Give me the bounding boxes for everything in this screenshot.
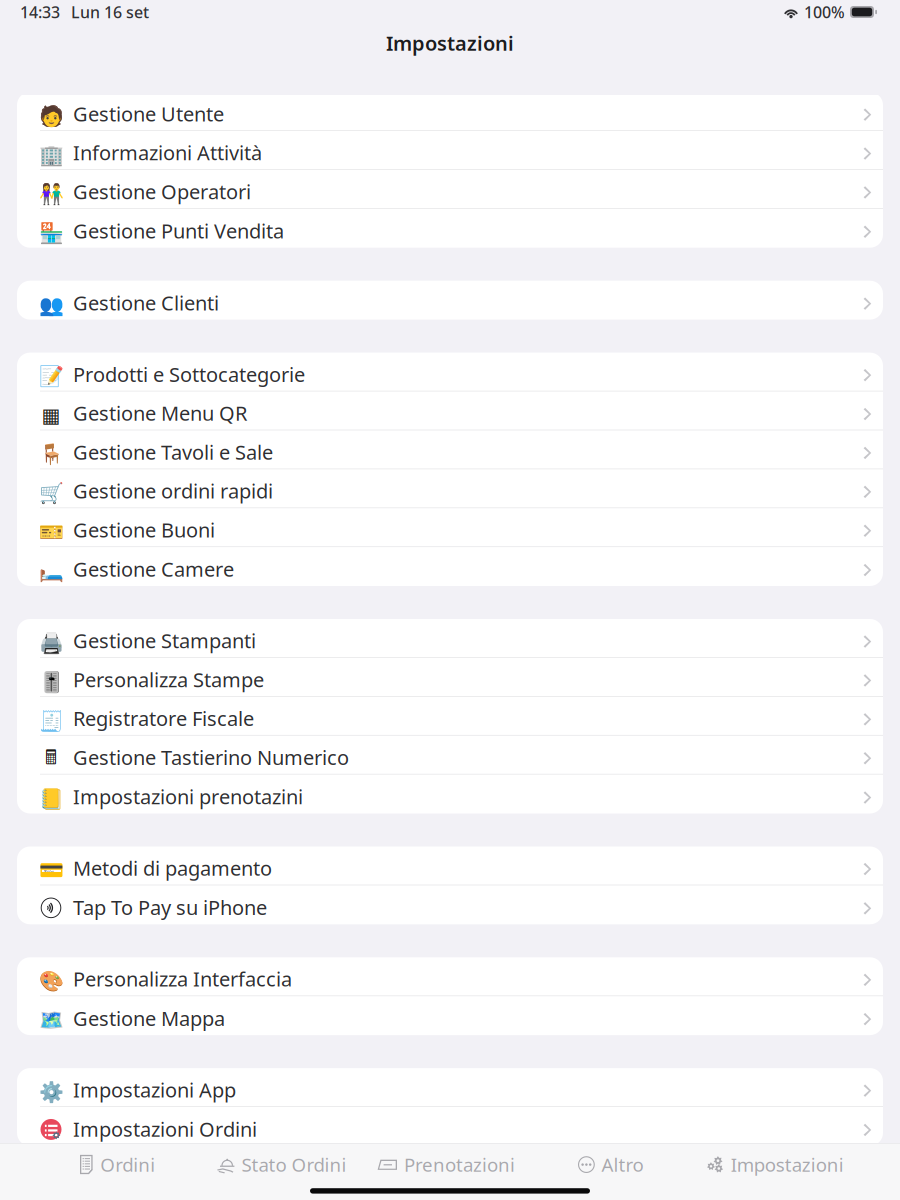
staticText: Gestione Punti Vendita: [73, 217, 284, 244]
button[interactable]: Impostazioni: [693, 1144, 857, 1186]
staticText: Registratore Fiscale: [73, 705, 254, 732]
staticText: Prodotti e Sottocategorie: [73, 361, 305, 387]
staticText: 💳: [38, 859, 63, 882]
staticText: 🧾: [38, 709, 63, 732]
button[interactable]: 👥: [17, 281, 883, 320]
button[interactable]: 🛒: [17, 469, 883, 508]
button[interactable]: Ordini: [35, 1144, 199, 1186]
staticText: 🏪: [38, 222, 63, 245]
staticText: Altro: [601, 1152, 643, 1177]
staticText: Informazioni Attività: [73, 139, 262, 166]
button[interactable]: 🏢: [17, 131, 883, 170]
staticText: Gestione Tastierino Numerico: [73, 744, 349, 771]
button[interactable]: Stato Ordini: [199, 1144, 364, 1186]
staticText: ⚙️: [38, 1081, 63, 1104]
staticText: Gestione Stampanti: [73, 627, 256, 654]
staticText: Impostazioni Ordini: [73, 1116, 257, 1142]
button[interactable]: ▦: [17, 391, 883, 430]
staticText: Prenotazioni: [404, 1152, 515, 1177]
button[interactable]: 👫: [17, 170, 883, 209]
staticText: Tap To Pay su iPhone: [73, 894, 267, 921]
button[interactable]: Prenotazioni: [364, 1144, 528, 1186]
staticText: 🪑: [38, 443, 63, 466]
staticText: 🎚️: [38, 670, 63, 693]
staticText: Impostazioni prenotazini: [73, 783, 303, 810]
staticText: 📒: [38, 788, 63, 810]
staticText: 🛒: [38, 482, 63, 505]
staticText: Gestione Utente: [73, 100, 224, 127]
staticText: 🎨: [38, 970, 63, 993]
button[interactable]: 🎚️: [17, 658, 883, 697]
staticText: 🎫: [38, 521, 63, 544]
staticText: Ordini: [100, 1152, 155, 1177]
staticText: Stato Ordini: [242, 1152, 347, 1177]
button[interactable]: ⚙️: [17, 1068, 883, 1107]
button[interactable]: Tap To Pay su iPhone: [17, 885, 883, 924]
staticText: 🧑: [38, 105, 63, 128]
staticText: Personalizza Interfaccia: [73, 966, 292, 992]
staticText: Impostazioni: [386, 30, 514, 56]
staticText: Gestione Operatori: [73, 178, 251, 205]
staticText: 🛏️: [38, 560, 63, 583]
staticText: Gestione Menu QR: [73, 400, 247, 426]
staticText: Gestione Mappa: [73, 1005, 225, 1031]
button[interactable]: Impostazioni Ordini: [17, 1107, 883, 1146]
button[interactable]: 🗺️: [17, 996, 883, 1035]
button[interactable]: 🎨: [17, 957, 883, 996]
staticText: Metodi di pagamento: [73, 855, 272, 881]
staticText: 👫: [38, 182, 63, 205]
staticText: 👥: [38, 294, 63, 317]
button[interactable]: 🖩: [17, 736, 883, 775]
staticText: Impostazioni: [731, 1152, 844, 1177]
staticText: Gestione ordini rapidi: [73, 478, 273, 504]
staticText: 14:33: [20, 1, 60, 23]
button[interactable]: 🖨️: [17, 619, 883, 658]
staticText: 🖨️: [38, 632, 63, 654]
staticText: 100%: [804, 1, 845, 23]
button[interactable]: 🧑: [17, 92, 883, 131]
staticText: Gestione Tavoli e Sale: [73, 439, 273, 465]
button[interactable]: 💳: [17, 846, 883, 885]
staticText: Gestione Clienti: [73, 289, 219, 316]
button[interactable]: 📝: [17, 353, 883, 391]
staticText: Lun 16 set: [71, 1, 149, 23]
staticText: Gestione Camere: [73, 556, 234, 582]
staticText: Personalizza Stampe: [73, 666, 264, 693]
staticText: 🖩: [45, 743, 57, 776]
button[interactable]: 🛏️: [17, 547, 883, 586]
staticText: Impostazioni App: [73, 1076, 236, 1103]
staticText: 🏢: [38, 144, 63, 166]
button[interactable]: 🎫: [17, 508, 883, 547]
button[interactable]: 🧾: [17, 697, 883, 736]
staticText: 🗺️: [38, 1009, 63, 1032]
button[interactable]: 🪑: [17, 430, 883, 469]
staticText: ▦: [41, 404, 60, 427]
staticText: 📝: [38, 365, 63, 388]
staticText: Gestione Buoni: [73, 516, 215, 543]
button[interactable]: 📒: [17, 775, 883, 813]
button[interactable]: 🏪: [17, 209, 883, 248]
button[interactable]: Altro: [528, 1144, 693, 1186]
